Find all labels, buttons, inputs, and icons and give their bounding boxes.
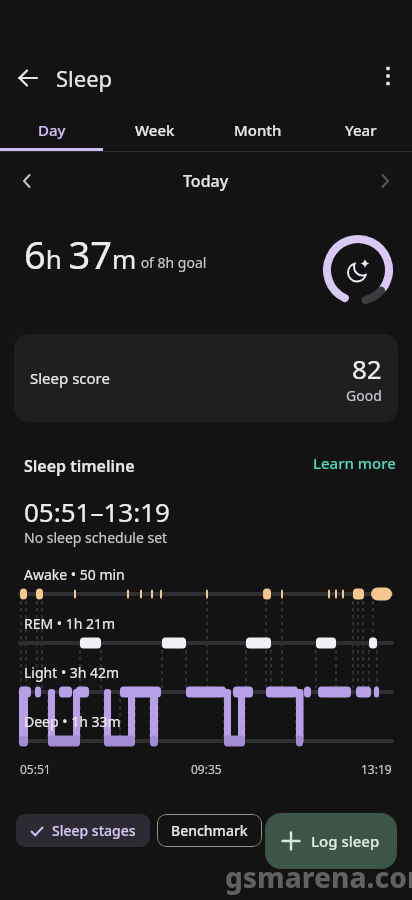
staticText: Month bbox=[234, 120, 282, 140]
staticText: Sleep timeline bbox=[24, 455, 135, 477]
staticText: Day bbox=[38, 120, 66, 140]
button[interactable]: Week bbox=[103, 109, 206, 151]
staticText: of 8h goal bbox=[137, 253, 207, 272]
staticText: 13:19 bbox=[361, 761, 392, 777]
staticText: Good bbox=[346, 386, 382, 405]
staticText: Benchmark bbox=[171, 821, 248, 840]
button[interactable]: Month bbox=[206, 109, 309, 151]
button[interactable] bbox=[370, 166, 400, 196]
button[interactable] bbox=[372, 60, 404, 92]
button[interactable]: Learn more bbox=[313, 453, 396, 473]
staticText: 05:51 bbox=[20, 761, 51, 777]
staticText: 82 bbox=[352, 351, 382, 386]
button[interactable] bbox=[12, 62, 44, 94]
button[interactable]: Sleep stages bbox=[16, 814, 150, 847]
staticText: Year bbox=[345, 120, 377, 140]
staticText: Light • 3h 42m bbox=[24, 663, 120, 682]
button[interactable] bbox=[12, 166, 42, 196]
staticText: Sleep score bbox=[30, 368, 110, 388]
staticText: Awake • 50 min bbox=[24, 565, 125, 584]
staticText: gsmarena.com bbox=[225, 858, 412, 896]
button[interactable]: Day bbox=[0, 109, 103, 151]
button[interactable]: Benchmark bbox=[157, 814, 262, 847]
staticText: Deep • 1h 33m bbox=[24, 712, 121, 731]
staticText: Log sleep bbox=[311, 831, 380, 851]
staticText: 09:35 bbox=[191, 761, 222, 777]
staticText: 05:51–13:19 bbox=[24, 494, 170, 529]
staticText: Sleep stages bbox=[52, 821, 136, 840]
staticText: REM • 1h 21m bbox=[24, 614, 116, 633]
button[interactable]: Year bbox=[309, 109, 412, 151]
staticText: Week bbox=[135, 120, 175, 140]
staticText: Sleep bbox=[56, 63, 113, 93]
button[interactable]: Today bbox=[183, 170, 229, 192]
button[interactable]: Log sleep bbox=[265, 813, 397, 869]
button[interactable]: Sleep score bbox=[14, 334, 398, 422]
staticText: 6h 37m bbox=[24, 228, 137, 280]
staticText: No sleep schedule set bbox=[24, 528, 168, 547]
